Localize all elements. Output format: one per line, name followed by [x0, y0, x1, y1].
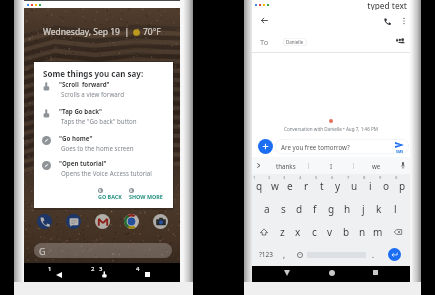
staticText: p — [399, 179, 406, 193]
staticText: I — [330, 162, 333, 170]
button[interactable]: d — [291, 197, 307, 220]
button[interactable]: Gmail — [95, 214, 110, 229]
staticText: we — [372, 162, 381, 170]
button[interactable]: f — [307, 197, 323, 220]
button[interactable]: "Go home" — [34, 134, 173, 156]
staticText: 5 — [315, 175, 318, 181]
button[interactable]: s — [275, 197, 291, 220]
button[interactable]: c — [306, 220, 322, 243]
staticText: "Tap Go back" — [59, 107, 102, 115]
button[interactable]: Voice input — [398, 161, 407, 170]
button[interactable]: Home — [99, 269, 110, 280]
staticText: b — [343, 225, 350, 239]
button[interactable]: Enter — [388, 248, 401, 261]
button[interactable]: Space — [307, 243, 366, 266]
button[interactable]: Emoji — [292, 243, 307, 266]
button[interactable]: Recents — [142, 269, 153, 280]
button[interactable]: Add attachment — [258, 139, 273, 154]
staticText: 9 — [379, 175, 382, 181]
button[interactable]: , — [277, 243, 292, 266]
button[interactable]: GO BACK — [98, 188, 122, 195]
button[interactable]: k — [371, 197, 387, 220]
button[interactable]: . — [366, 243, 381, 266]
staticText: x — [295, 225, 301, 239]
staticText: ?123 — [259, 250, 273, 259]
button[interactable]: g — [323, 197, 339, 220]
button[interactable]: x — [290, 220, 306, 243]
button[interactable]: Messages — [66, 214, 81, 229]
staticText: i — [369, 179, 372, 193]
button[interactable]: l — [387, 197, 403, 220]
button[interactable]: Back — [258, 14, 271, 27]
button[interactable]: More options — [398, 15, 409, 26]
staticText: . — [372, 249, 375, 260]
staticText: l — [394, 202, 397, 216]
button[interactable]: 2 — [267, 174, 282, 197]
staticText: d — [296, 202, 303, 216]
button[interactable]: b — [338, 220, 354, 243]
button[interactable]: 1 — [252, 174, 267, 197]
button[interactable]: v — [322, 220, 338, 243]
staticText: 3 — [99, 265, 103, 273]
button[interactable]: Phone — [37, 214, 52, 229]
staticText: 1 — [253, 175, 256, 181]
staticText: Are you free tomorrow? — [281, 143, 350, 151]
staticText: To — [260, 37, 269, 47]
button[interactable]: j — [355, 197, 371, 220]
staticText: s — [281, 202, 286, 216]
staticText: Taps the "Go back" button — [61, 117, 137, 125]
button[interactable]: m — [370, 220, 386, 243]
staticText: e — [287, 179, 293, 193]
staticText: 6 — [130, 188, 133, 193]
staticText: Some things you can say: — [43, 68, 144, 79]
button[interactable]: 8 — [362, 174, 378, 197]
button[interactable]: 3 — [282, 174, 298, 197]
staticText: 2 — [268, 175, 271, 181]
button[interactable]: thanks — [263, 162, 308, 170]
staticText: q — [256, 179, 263, 193]
staticText: n — [359, 225, 366, 239]
button[interactable]: n — [354, 220, 370, 243]
button[interactable]: Back — [53, 269, 64, 280]
button[interactable]: Add people — [394, 35, 407, 48]
button[interactable]: "Tap Go back" — [34, 107, 173, 129]
button[interactable]: Home — [325, 266, 338, 279]
button[interactable]: More suggestions — [254, 161, 263, 170]
staticText: Opens the Voice Access tutorial — [61, 169, 152, 177]
button[interactable]: "Open tutorial" — [34, 159, 173, 181]
button[interactable]: Camera — [153, 214, 168, 229]
staticText: 4 — [299, 175, 302, 181]
button[interactable]: Danielle — [283, 38, 307, 46]
button[interactable]: 7 — [346, 174, 362, 197]
button[interactable]: Recents — [369, 266, 382, 279]
staticText: SMS — [396, 149, 404, 154]
button[interactable]: SHOW MORE — [129, 188, 163, 195]
button[interactable]: 9 — [378, 174, 394, 197]
button[interactable]: z — [275, 220, 290, 243]
button[interactable]: Shift — [252, 220, 275, 243]
button[interactable]: "Scroll forward" — [34, 80, 173, 102]
button[interactable]: a — [259, 197, 275, 220]
staticText: , — [283, 249, 286, 260]
button[interactable]: 5 — [314, 174, 330, 197]
button[interactable]: we — [354, 162, 398, 170]
button[interactable]: Are you free tomorrow? — [275, 139, 409, 154]
staticText: v — [327, 225, 333, 239]
staticText: Conversation with Danielle • Aug 7, 1:46… — [284, 126, 378, 132]
button[interactable]: 0 — [394, 174, 410, 197]
button[interactable]: Chrome — [124, 214, 139, 229]
button[interactable]: 4 — [298, 174, 314, 197]
button[interactable]: ?123 — [254, 243, 277, 266]
button[interactable]: 6 — [330, 174, 346, 197]
staticText: 1 — [48, 265, 52, 273]
staticText: G — [39, 245, 46, 257]
button[interactable]: Backspace — [386, 220, 410, 243]
button[interactable]: h — [339, 197, 355, 220]
staticText: u — [351, 179, 358, 193]
staticText: typed text — [269, 0, 407, 10]
button[interactable]: Hide keyboard — [280, 266, 293, 279]
button[interactable]: I — [309, 162, 353, 170]
button[interactable]: Call — [381, 15, 393, 27]
button[interactable]: Search — [34, 243, 172, 258]
staticText: thanks — [276, 162, 296, 170]
